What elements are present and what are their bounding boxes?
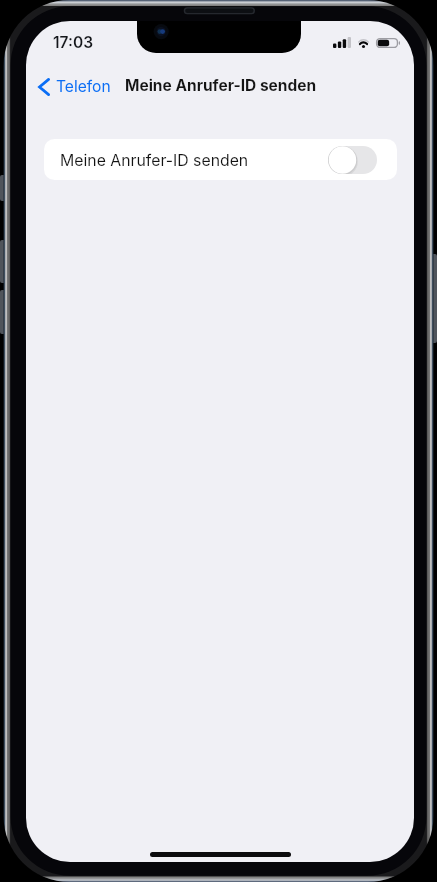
button[interactable]: Telefon	[33, 73, 117, 100]
staticText: 17:03	[53, 33, 93, 52]
staticText: Telefon	[56, 77, 111, 96]
staticText: Meine Anrufer-ID senden	[60, 151, 249, 170]
button[interactable]: Meine Anrufer-ID senden	[44, 139, 397, 180]
button[interactable]: Meine Anrufer-ID senden umschalten	[328, 146, 377, 174]
staticText: Meine Anrufer-ID senden	[125, 76, 317, 95]
